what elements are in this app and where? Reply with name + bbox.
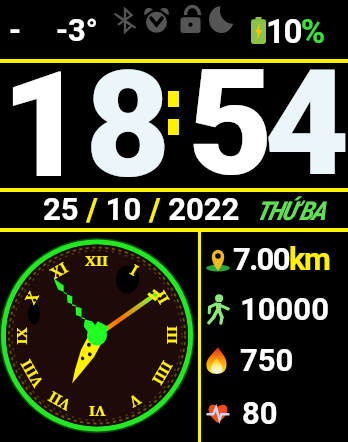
staticText: 80	[242, 395, 278, 431]
button[interactable]: THỨ BA	[256, 196, 325, 226]
staticText: 750	[240, 342, 294, 378]
staticText: -	[9, 12, 22, 48]
button[interactable]: 10%	[246, 8, 330, 50]
button[interactable]: 18	[1, 40, 170, 212]
staticText: 18	[1, 40, 170, 212]
button[interactable]: 25 / 10 / 2022	[43, 191, 240, 227]
staticText: THỨ BA	[256, 196, 325, 226]
staticText: 54	[188, 38, 341, 210]
button[interactable]: -3°	[50, 6, 94, 46]
button[interactable]: Weather steps	[2, 6, 40, 52]
button[interactable]: Heart rate 80	[202, 394, 348, 442]
button[interactable]: Do not disturb	[209, 6, 235, 33]
staticText: 10000	[240, 291, 329, 327]
button[interactable]: Calories 750	[202, 341, 348, 389]
button[interactable]: Steps 10000	[202, 290, 348, 338]
staticText: 25 / 10 / 2022	[43, 191, 240, 227]
button[interactable]: Bluetooth disconnected	[114, 9, 136, 32]
staticText: -3°	[56, 12, 98, 48]
button[interactable]: Analog clock	[0, 232, 198, 442]
button[interactable]: Alarm	[143, 6, 170, 33]
staticText: 7.00km	[233, 241, 330, 277]
button[interactable]: Distance 7.00 km	[202, 240, 348, 288]
button[interactable]: Screen unlocked	[180, 6, 201, 33]
button[interactable]: 54	[188, 38, 341, 210]
staticText: 10%	[266, 12, 324, 51]
